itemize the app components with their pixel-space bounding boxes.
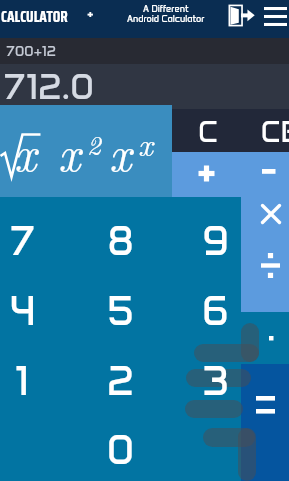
button[interactable]: Menu <box>258 0 289 38</box>
button[interactable]: Equals <box>241 364 289 481</box>
staticText: 9 <box>202 216 229 266</box>
staticText: 3 <box>202 356 229 406</box>
button[interactable]: Decimal point <box>241 312 289 364</box>
staticText: 0 <box>107 425 134 475</box>
staticText: 2 <box>107 356 134 406</box>
staticText: 2 <box>87 125 101 163</box>
button[interactable]: 2 <box>84 350 156 412</box>
staticText: + <box>87 2 94 24</box>
button[interactable]: Square root <box>0 109 56 197</box>
button[interactable]: CALCULATOR <box>0 0 110 38</box>
staticText: 5 <box>107 286 134 336</box>
staticText: C <box>198 114 218 149</box>
staticText: 1 <box>15 356 29 406</box>
button[interactable]: C <box>172 109 241 152</box>
staticText: x <box>58 117 81 185</box>
button[interactable]: Divide <box>241 255 289 312</box>
staticText: 4 <box>9 286 36 336</box>
button[interactable]: 0 <box>84 419 156 481</box>
button[interactable]: 5 <box>84 280 156 342</box>
button[interactable]: x to the power x <box>114 109 172 197</box>
staticText: 712.0 <box>3 64 94 108</box>
button[interactable]: 3 <box>179 350 251 412</box>
staticText: 700+12 <box>6 43 56 60</box>
staticText: 8 <box>107 216 134 266</box>
staticText: x <box>138 120 153 165</box>
button[interactable]: x squared <box>56 109 114 197</box>
staticText: Android Calculator <box>127 13 205 24</box>
button[interactable]: 4 <box>0 280 58 342</box>
button[interactable]: Exit <box>224 0 258 38</box>
button[interactable]: Plus <box>172 152 241 197</box>
button[interactable]: Multiply <box>241 197 289 255</box>
button[interactable]: 1 <box>0 350 58 412</box>
staticText: CE <box>261 114 289 149</box>
staticText: x <box>109 117 132 185</box>
staticText: 7 <box>9 216 36 266</box>
staticText: A Different <box>143 3 189 14</box>
button[interactable]: 8 <box>84 210 156 272</box>
button[interactable]: 6 <box>179 280 251 342</box>
button[interactable]: Minus <box>241 152 289 197</box>
staticText: x <box>14 117 37 185</box>
button[interactable]: 7 <box>0 210 58 272</box>
button[interactable]: 9 <box>179 210 251 272</box>
button[interactable]: CE <box>241 109 289 152</box>
staticText: 6 <box>202 286 229 336</box>
staticText: CALCULATOR <box>1 5 68 29</box>
